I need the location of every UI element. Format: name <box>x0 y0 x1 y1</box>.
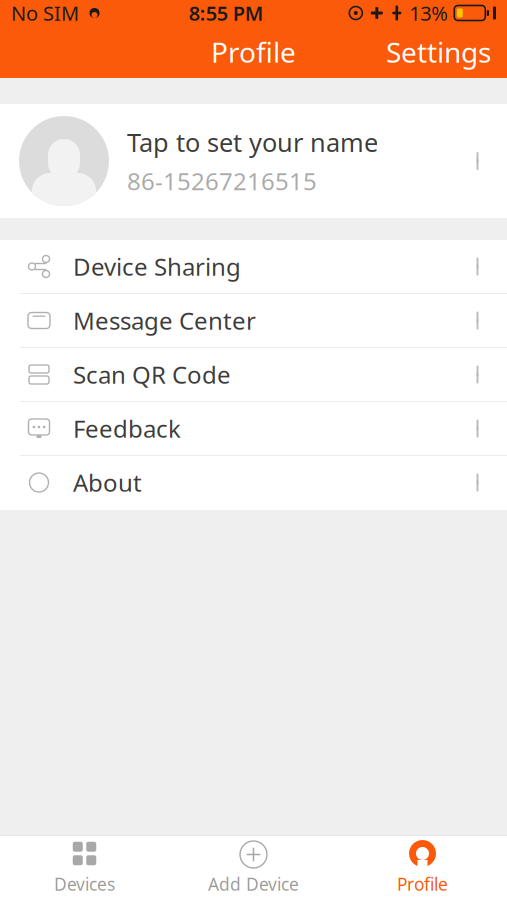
button[interactable]: Device Sharing <box>0 240 507 294</box>
button[interactable]: Profile <box>338 831 507 900</box>
button[interactable]: Add Device <box>169 831 338 900</box>
staticText: Scan QR Code <box>73 359 231 390</box>
button[interactable]: Scan QR Code <box>0 348 507 402</box>
staticText: No SIM <box>11 0 79 26</box>
staticText: 86-15267216515 <box>127 165 317 197</box>
staticText: Feedback <box>73 413 181 444</box>
button[interactable]: Settings <box>370 23 507 81</box>
button[interactable]: Tap to set your name <box>0 104 507 218</box>
button[interactable]: Feedback <box>0 402 507 456</box>
button[interactable]: About <box>0 456 507 510</box>
staticText: Message Center <box>73 305 256 336</box>
staticText: Add Device <box>208 872 299 895</box>
staticText: Profile <box>211 33 296 71</box>
staticText: 13% <box>409 0 448 26</box>
staticText: Devices <box>54 872 115 895</box>
staticText: 8:55 PM <box>189 0 264 26</box>
staticText: Settings <box>386 33 491 71</box>
button[interactable]: Message Center <box>0 294 507 348</box>
staticText: Device Sharing <box>73 251 241 282</box>
button[interactable]: Devices <box>0 831 169 900</box>
staticText: Tap to set your name <box>127 125 378 159</box>
staticText: Profile <box>397 872 448 895</box>
staticText: About <box>73 467 142 498</box>
